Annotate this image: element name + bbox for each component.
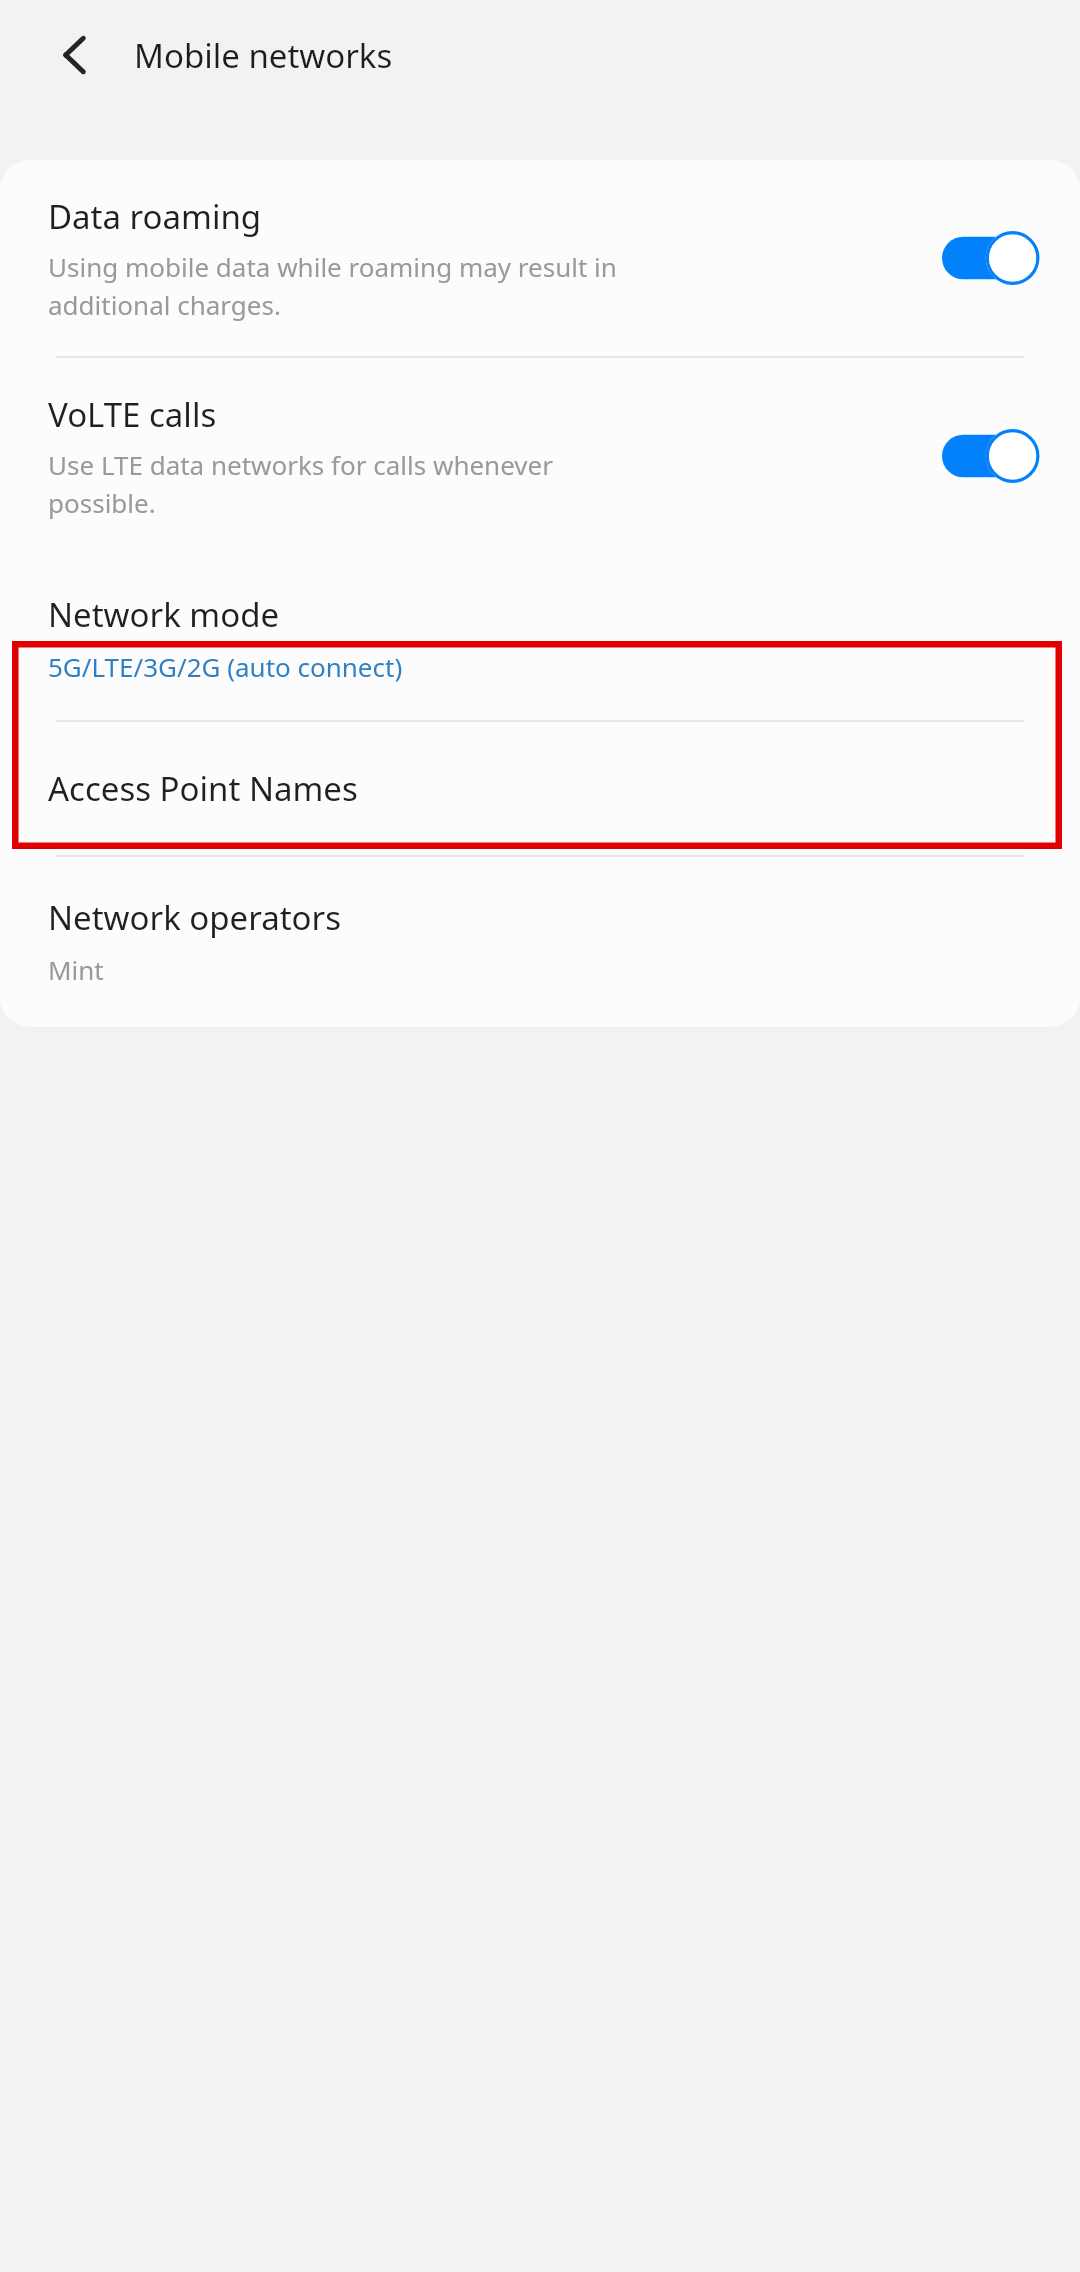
staticText: Network operators	[48, 895, 342, 940]
staticText: Mobile networks	[134, 33, 393, 78]
staticText: Data roaming	[48, 194, 262, 239]
button[interactable]: Network operators	[0, 857, 1080, 1027]
staticText: Mint	[48, 952, 104, 987]
staticText: Network mode	[48, 592, 280, 637]
button[interactable]: Toggle on	[942, 230, 1042, 286]
button[interactable]: Back	[40, 17, 116, 93]
button[interactable]: Toggle on	[942, 428, 1042, 484]
staticText: Use LTE data networks for calls whenever…	[48, 447, 553, 520]
button[interactable]: VoLTE calls	[0, 358, 1080, 554]
staticText: VoLTE calls	[48, 392, 217, 437]
button[interactable]: Network mode	[0, 554, 1080, 720]
staticText: Using mobile data while roaming may resu…	[48, 249, 617, 322]
button[interactable]: Access Point Names	[0, 722, 1080, 855]
button[interactable]: Data roaming	[0, 160, 1080, 356]
staticText: 5G/LTE/3G/2G (auto connect)	[48, 649, 403, 684]
staticText: Access Point Names	[48, 766, 358, 811]
